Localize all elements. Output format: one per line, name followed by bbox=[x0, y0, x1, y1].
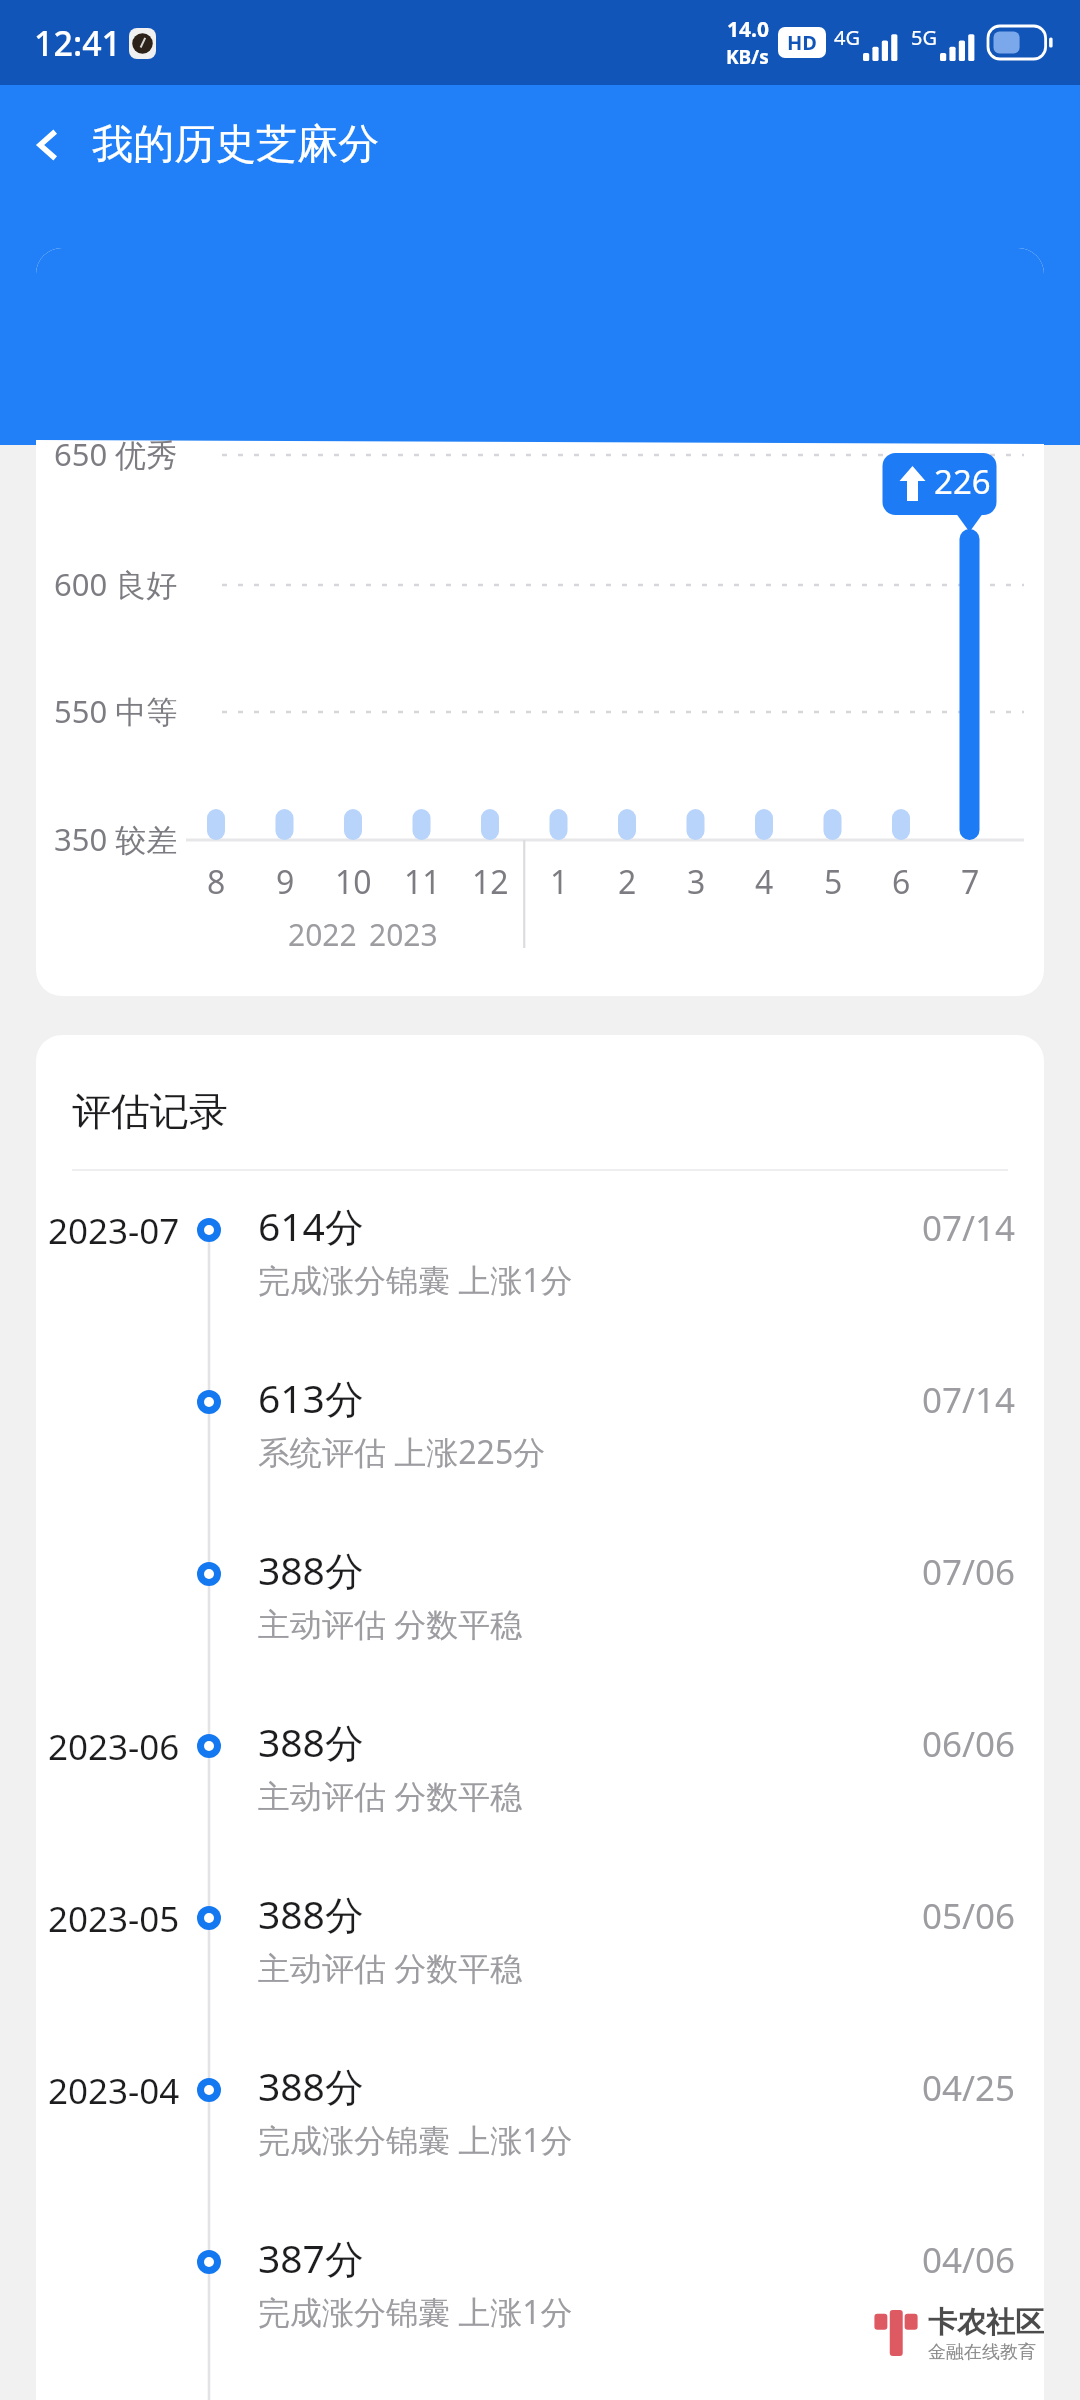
staticText: KB/s bbox=[726, 44, 769, 70]
staticText: 8 bbox=[207, 860, 226, 904]
staticText: 6 bbox=[892, 860, 911, 904]
staticText: 614分 bbox=[258, 1199, 364, 1252]
staticText: 388分 bbox=[258, 1715, 364, 1768]
button[interactable]: 2023-07 bbox=[36, 1186, 1044, 1336]
staticText: 388分 bbox=[258, 2059, 364, 2112]
staticText: 04/06 bbox=[922, 2236, 1016, 2284]
button[interactable]: 2023-04 bbox=[36, 2046, 1044, 2196]
staticText: 387分 bbox=[258, 2231, 364, 2284]
staticText: 完成涨分锦囊 上涨1分 bbox=[258, 1258, 573, 1302]
staticText: HD bbox=[787, 29, 817, 56]
staticText: 系统评估 上涨225分 bbox=[258, 1430, 546, 1474]
button[interactable]: 2023-05 bbox=[36, 1874, 1044, 2024]
staticText: 主动评估 分数平稳 bbox=[258, 1946, 523, 1990]
button[interactable]: 2023-06 bbox=[36, 1702, 1044, 1852]
staticText: 2022 bbox=[288, 914, 357, 955]
staticText: 07/14 bbox=[922, 1204, 1016, 1252]
button[interactable]: 387分 bbox=[36, 2218, 1044, 2368]
staticText: 5 bbox=[824, 860, 843, 904]
staticText: 3 bbox=[687, 860, 706, 904]
staticText: 388分 bbox=[258, 1887, 364, 1940]
staticText: 卡农社区 bbox=[928, 2304, 1044, 2341]
staticText: 9 bbox=[276, 860, 295, 904]
staticText: 完成涨分锦囊 上涨1分 bbox=[258, 2118, 573, 2162]
staticText: 06/06 bbox=[922, 1720, 1016, 1768]
staticText: 2 bbox=[618, 860, 637, 904]
staticText: 主动评估 分数平稳 bbox=[258, 1602, 523, 1646]
staticText: 12 bbox=[472, 860, 509, 904]
button[interactable]: Back bbox=[16, 113, 80, 177]
staticText: 350 较差 bbox=[54, 818, 178, 860]
staticText: 07/14 bbox=[922, 1376, 1016, 1424]
staticText: 11 bbox=[404, 860, 441, 904]
staticText: 10 bbox=[335, 860, 372, 904]
staticText: 613分 bbox=[258, 1371, 364, 1424]
staticText: 12:41 bbox=[34, 20, 122, 66]
staticText: 4 bbox=[755, 860, 774, 904]
staticText: 2023-07 bbox=[48, 1207, 180, 1255]
staticText: 04/25 bbox=[922, 2064, 1016, 2112]
staticText: 我的历史芝麻分 bbox=[92, 119, 379, 171]
staticText: 07/06 bbox=[922, 1548, 1016, 1596]
staticText: 2023-05 bbox=[48, 1895, 180, 1943]
staticText: 金融在线教育 bbox=[928, 2341, 1036, 2364]
staticText: 2023 bbox=[369, 914, 438, 955]
staticText: 完成涨分锦囊 上涨1分 bbox=[258, 2290, 573, 2334]
staticText: 4G bbox=[834, 24, 860, 51]
staticText: 主动评估 分数平稳 bbox=[258, 1774, 523, 1818]
button[interactable]: 613分 bbox=[36, 1358, 1044, 1508]
staticText: 2023-06 bbox=[48, 1723, 180, 1771]
staticText: 7 bbox=[961, 860, 980, 904]
staticText: 550 中等 bbox=[54, 690, 178, 732]
staticText: 650 优秀 bbox=[54, 433, 178, 475]
staticText: 226 bbox=[934, 459, 991, 504]
staticText: 05/06 bbox=[922, 1892, 1016, 1940]
staticText: 2023-04 bbox=[48, 2067, 180, 2115]
staticText: 评估记录 bbox=[72, 1087, 228, 1136]
staticText: 5G bbox=[911, 24, 937, 51]
staticText: 1 bbox=[550, 860, 569, 904]
staticText: 388分 bbox=[258, 1543, 364, 1596]
staticText: 14.0 bbox=[727, 15, 769, 44]
button[interactable]: 388分 bbox=[36, 1530, 1044, 1680]
staticText: 600 良好 bbox=[54, 563, 178, 605]
